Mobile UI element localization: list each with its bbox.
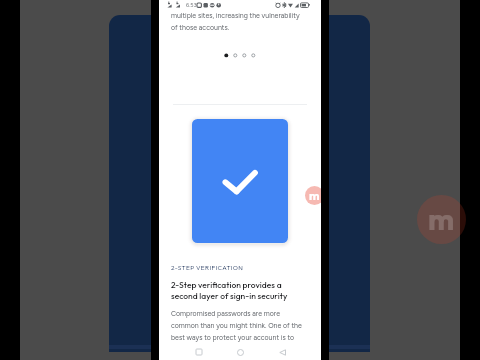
staticText: 2-STEP VERIFICATION (171, 263, 244, 271)
staticText: common than you might think. One of the (171, 321, 302, 329)
staticText: second layer of sign-in security (171, 290, 288, 301)
staticText: m (428, 200, 455, 238)
staticText: 2-Step verification provides a (171, 279, 282, 290)
staticText: m (309, 188, 320, 203)
button[interactable]: Back (271, 344, 293, 360)
staticText: Compromised passwords are more (171, 309, 280, 317)
staticText: 6.53 (186, 2, 197, 9)
button[interactable]: Home (229, 344, 251, 360)
staticText: multiple sites, increasing the vulnerabi… (171, 11, 300, 19)
staticText: best ways to protect your account is to (171, 333, 295, 341)
staticText: of those accounts. (171, 23, 230, 31)
button[interactable]: Recent apps (188, 344, 210, 360)
